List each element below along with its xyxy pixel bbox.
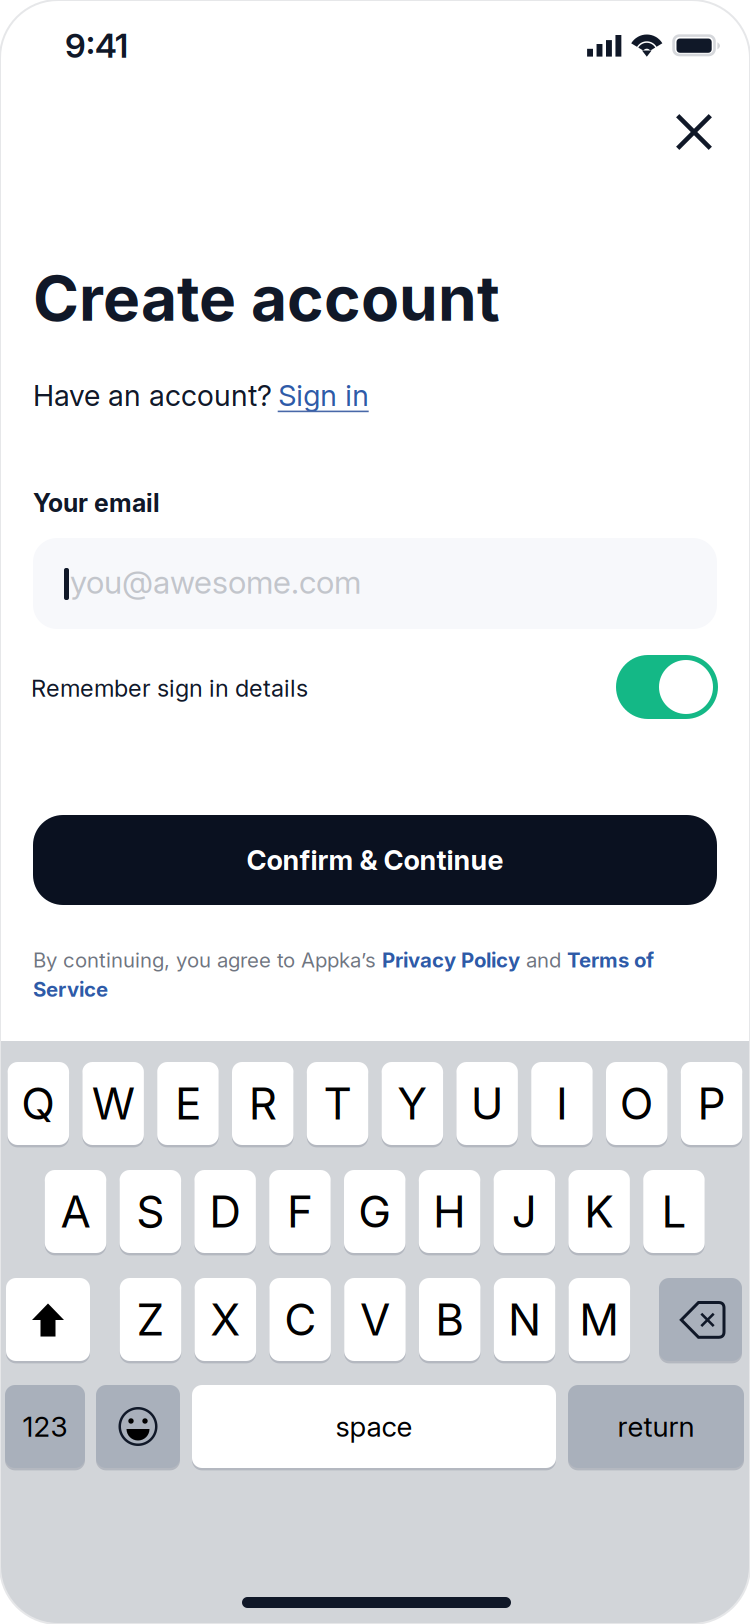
- staticText: F: [287, 1185, 313, 1238]
- button[interactable]: Terms of: [567, 948, 654, 972]
- staticText: V: [360, 1293, 390, 1346]
- button[interactable]: N: [494, 1278, 555, 1363]
- staticText: T: [324, 1077, 352, 1130]
- button[interactable]: Shift: [6, 1278, 90, 1363]
- staticText: U: [471, 1077, 504, 1130]
- staticText: E: [175, 1077, 201, 1130]
- button[interactable]: J: [494, 1170, 555, 1255]
- button[interactable]: X: [195, 1278, 256, 1363]
- button[interactable]: R: [232, 1062, 293, 1147]
- button[interactable]: Service: [33, 977, 108, 1002]
- button[interactable]: P: [681, 1062, 742, 1147]
- button[interactable]: 123: [5, 1385, 85, 1470]
- staticText: S: [136, 1185, 164, 1238]
- button[interactable]: space: [192, 1385, 556, 1470]
- button[interactable]: K: [568, 1170, 630, 1255]
- button[interactable]: Sign in: [278, 378, 370, 412]
- button[interactable]: Privacy Policy: [382, 948, 520, 972]
- staticText: K: [584, 1185, 614, 1238]
- button[interactable]: Delete: [659, 1278, 742, 1363]
- staticText: Sign in: [278, 378, 369, 413]
- button[interactable]: S: [120, 1170, 181, 1255]
- staticText: B: [435, 1293, 464, 1346]
- button[interactable]: Remember sign in details: [616, 655, 718, 719]
- staticText: G: [358, 1185, 391, 1238]
- button[interactable]: Emoji: [96, 1385, 180, 1470]
- staticText: J: [512, 1185, 537, 1238]
- button[interactable]: Confirm & Continue: [33, 815, 717, 905]
- staticText: D: [209, 1185, 241, 1238]
- button[interactable]: H: [419, 1170, 480, 1255]
- button[interactable]: U: [456, 1062, 518, 1147]
- staticText: A: [60, 1185, 90, 1238]
- staticText: H: [433, 1185, 466, 1238]
- staticText: W: [92, 1077, 135, 1130]
- staticText: you@awesome.com: [70, 563, 361, 601]
- button[interactable]: Z: [120, 1278, 181, 1363]
- button[interactable]: F: [269, 1170, 331, 1255]
- button[interactable]: L: [643, 1170, 705, 1255]
- staticText: M: [579, 1293, 619, 1346]
- button[interactable]: G: [344, 1170, 405, 1255]
- staticText: 9:41: [65, 25, 128, 66]
- staticText: By continuing, you agree to Appka’s: [33, 948, 382, 972]
- button[interactable]: T: [307, 1062, 368, 1147]
- staticText: space: [335, 1410, 412, 1443]
- button[interactable]: A: [45, 1170, 106, 1255]
- button[interactable]: W: [82, 1062, 144, 1147]
- staticText: C: [284, 1293, 316, 1346]
- staticText: L: [661, 1185, 686, 1238]
- button[interactable]: Y: [382, 1062, 443, 1147]
- staticText: Create account: [33, 261, 500, 336]
- button[interactable]: V: [344, 1278, 406, 1363]
- staticText: Q: [21, 1077, 55, 1130]
- staticText: Confirm & Continue: [246, 843, 503, 877]
- button[interactable]: B: [419, 1278, 480, 1363]
- staticText: X: [210, 1293, 240, 1346]
- button[interactable]: return: [568, 1385, 744, 1470]
- staticText: return: [617, 1410, 694, 1443]
- button[interactable]: O: [606, 1062, 667, 1147]
- button[interactable]: Close: [653, 91, 735, 173]
- staticText: Remember sign in details: [31, 674, 308, 702]
- staticText: Service: [33, 977, 108, 1002]
- staticText: N: [508, 1293, 541, 1346]
- staticText: Privacy Policy: [382, 948, 520, 972]
- staticText: and: [520, 948, 567, 972]
- button[interactable]: C: [269, 1278, 331, 1363]
- staticText: P: [697, 1077, 725, 1130]
- button[interactable]: E: [157, 1062, 219, 1147]
- staticText: 123: [22, 1410, 67, 1443]
- staticText: Terms of: [567, 948, 654, 972]
- staticText: I: [556, 1077, 568, 1130]
- staticText: Y: [397, 1077, 427, 1130]
- button[interactable]: Q: [8, 1062, 69, 1147]
- staticText: R: [249, 1077, 277, 1130]
- button[interactable]: D: [194, 1170, 256, 1255]
- staticText: Z: [137, 1293, 165, 1346]
- button[interactable]: I: [531, 1062, 593, 1147]
- staticText: Your email: [33, 488, 160, 518]
- staticText: Have an account?: [33, 378, 280, 413]
- staticText: O: [620, 1077, 654, 1130]
- button[interactable]: M: [569, 1278, 630, 1363]
